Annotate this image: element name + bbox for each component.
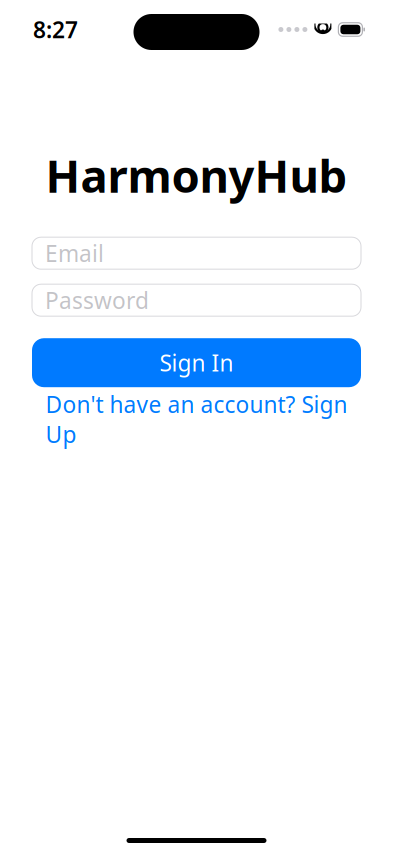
button[interactable]: Sign In <box>32 338 361 387</box>
staticText: 8:27 <box>33 14 78 44</box>
staticText: Password <box>45 285 149 315</box>
staticText: HarmonyHub <box>45 145 347 205</box>
button[interactable]: Password <box>32 284 361 316</box>
button[interactable]: Email <box>32 237 361 269</box>
staticText: Don't have an account? Sign Up <box>45 389 347 449</box>
staticText: Email <box>45 238 104 268</box>
staticText: Sign In <box>159 348 233 378</box>
button[interactable]: Don't have an account? Sign Up <box>32 406 361 432</box>
